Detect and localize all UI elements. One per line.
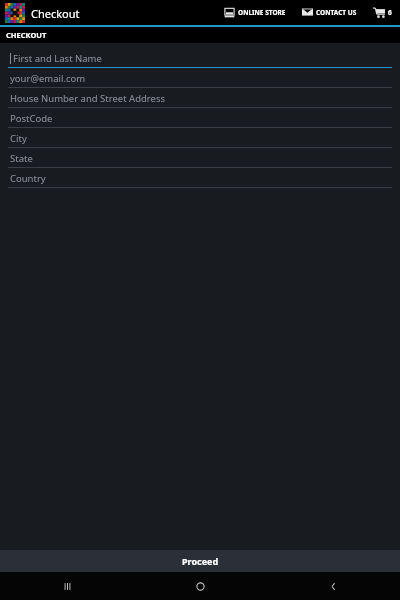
button[interactable]: Checkout <box>3 3 82 23</box>
staticText: Country <box>10 172 46 185</box>
button[interactable]: Home <box>134 572 267 600</box>
button[interactable]: State <box>0 148 400 168</box>
staticText: Proceed <box>182 555 219 567</box>
staticText: PostCode <box>10 112 53 125</box>
staticText: Checkout <box>31 6 80 21</box>
button[interactable]: Back <box>267 572 400 600</box>
button[interactable]: City <box>0 128 400 148</box>
button[interactable]: House Number and Street Address <box>0 88 400 108</box>
button[interactable]: Recent apps <box>0 572 134 600</box>
button[interactable]: Country <box>0 168 400 188</box>
staticText: First and Last Name <box>13 52 102 65</box>
staticText: your@email.com <box>10 72 86 85</box>
staticText: ONLINE STORE <box>238 8 286 17</box>
button[interactable]: First and Last Name <box>0 48 400 68</box>
button[interactable]: Cart, 6 items <box>370 2 395 23</box>
staticText: House Number and Street Address <box>10 92 166 105</box>
staticText: CONTACT US <box>316 8 357 17</box>
button[interactable]: PostCode <box>0 108 400 128</box>
staticText: 6 <box>388 8 392 17</box>
staticText: State <box>10 152 33 165</box>
button[interactable]: your@email.com <box>0 68 400 88</box>
button[interactable]: ONLINE STORE <box>221 3 289 22</box>
button[interactable]: CONTACT US <box>299 3 360 22</box>
staticText: CHECKOUT <box>6 30 47 40</box>
staticText: City <box>10 132 27 145</box>
button[interactable]: Proceed <box>0 550 400 572</box>
